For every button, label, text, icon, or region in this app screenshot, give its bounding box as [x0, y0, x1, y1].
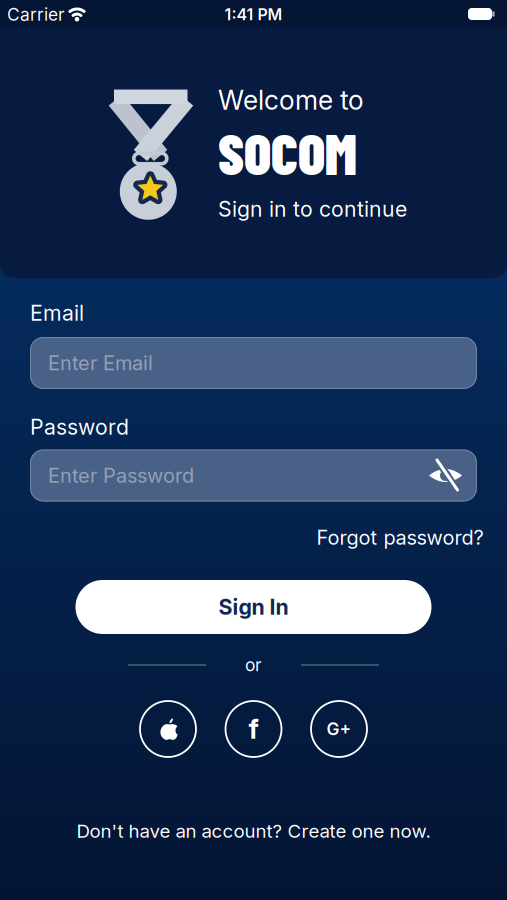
- staticText: 1:41 PM: [224, 5, 282, 24]
- button[interactable]: Sign In: [75, 580, 431, 634]
- staticText: Welcome to: [218, 84, 364, 116]
- staticText: Email: [30, 300, 84, 326]
- button[interactable]: Don't have an account? Create one now.: [76, 820, 430, 842]
- button[interactable]: [140, 701, 196, 757]
- staticText: Password: [30, 414, 129, 440]
- button[interactable]: G+: [311, 701, 367, 757]
- staticText: Sign In: [218, 594, 288, 620]
- staticText: or: [245, 655, 262, 675]
- button[interactable]: Enter Email: [30, 337, 477, 389]
- staticText: Don't have an account? Create one now.: [76, 820, 430, 842]
- button[interactable]: Forgot password?: [316, 526, 483, 549]
- staticText: Sign in to continue: [218, 196, 407, 222]
- staticText: Carrier: [7, 4, 65, 25]
- staticText: Forgot password?: [316, 526, 483, 549]
- staticText: Enter Email: [48, 351, 153, 375]
- button[interactable]: f: [225, 701, 281, 757]
- staticText: f: [248, 713, 258, 745]
- staticText: SOCOM: [218, 119, 357, 186]
- staticText: G+: [326, 719, 351, 739]
- staticText: Enter Password: [48, 464, 194, 487]
- button[interactable]: Enter Password: [30, 449, 477, 501]
